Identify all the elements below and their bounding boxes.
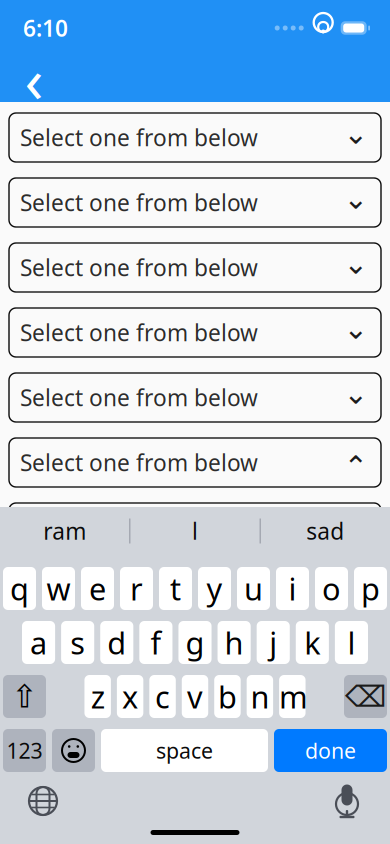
- button[interactable]: done: [274, 729, 387, 772]
- staticText: x: [122, 676, 138, 717]
- button[interactable]: y: [198, 567, 231, 610]
- button[interactable]: Shift: [3, 675, 46, 718]
- button[interactable]: Select one from below: [9, 113, 381, 162]
- button[interactable]: b: [214, 675, 241, 718]
- staticText: r: [130, 568, 143, 609]
- button[interactable]: Back: [8, 55, 60, 103]
- staticText: y: [206, 568, 222, 609]
- staticText: done: [305, 736, 356, 765]
- button[interactable]: Delete: [344, 675, 387, 718]
- staticText: Select one from below: [20, 512, 258, 542]
- staticText: p: [361, 568, 380, 609]
- button[interactable]: l: [130, 507, 260, 555]
- staticText: d: [107, 622, 126, 663]
- staticText: ⌄: [343, 312, 368, 345]
- staticText: Select one from below: [20, 252, 258, 282]
- staticText: e: [89, 568, 106, 609]
- staticText: ram: [43, 516, 86, 546]
- button[interactable]: h: [218, 621, 251, 664]
- staticText: h: [225, 622, 244, 663]
- staticText: f: [150, 622, 161, 663]
- button[interactable]: Switch keyboard: [20, 778, 66, 824]
- button[interactable]: e: [81, 567, 114, 610]
- button[interactable]: s: [61, 621, 94, 664]
- staticText: o: [322, 568, 341, 609]
- button[interactable]: a: [22, 621, 55, 664]
- button[interactable]: space: [101, 729, 268, 772]
- button[interactable]: Select one from below: [9, 438, 381, 487]
- staticText: z: [91, 676, 105, 717]
- button[interactable]: Select one from below: [9, 373, 381, 422]
- staticText: ⌄: [343, 182, 368, 215]
- staticText: ⇧: [11, 678, 38, 715]
- button[interactable]: r: [120, 567, 153, 610]
- staticText: ⌫: [345, 680, 386, 713]
- staticText: ⌄: [343, 117, 368, 150]
- staticText: m: [279, 676, 305, 717]
- button[interactable]: u: [237, 567, 270, 610]
- button[interactable]: t: [159, 567, 192, 610]
- staticText: space: [156, 736, 213, 765]
- staticText: ⌃: [343, 450, 368, 483]
- button[interactable]: w: [42, 567, 75, 610]
- button[interactable]: n: [247, 675, 273, 718]
- staticText: l: [192, 516, 198, 546]
- button[interactable]: v: [182, 675, 208, 718]
- staticText: 6:10: [23, 13, 68, 43]
- button[interactable]: q: [3, 567, 36, 610]
- button[interactable]: Select one from below: [9, 503, 381, 552]
- button[interactable]: Select one from below: [9, 308, 381, 357]
- button[interactable]: z: [84, 675, 111, 718]
- staticText: a: [30, 622, 47, 663]
- button[interactable]: Dictate: [324, 778, 370, 824]
- button[interactable]: Select one from below: [9, 243, 381, 292]
- button[interactable]: 123: [3, 729, 46, 772]
- button[interactable]: m: [279, 675, 305, 718]
- staticText: q: [10, 568, 29, 609]
- staticText: Select one from below: [20, 122, 258, 152]
- staticText: j: [269, 622, 277, 663]
- staticText: l: [347, 622, 355, 663]
- staticText: Select one from below: [20, 317, 258, 347]
- staticText: ⌄: [343, 247, 368, 280]
- button[interactable]: ram: [0, 507, 129, 555]
- button[interactable]: l: [335, 621, 368, 664]
- staticText: v: [187, 676, 203, 717]
- staticText: c: [155, 676, 170, 717]
- button[interactable]: j: [257, 621, 290, 664]
- staticText: 123: [6, 736, 42, 765]
- button[interactable]: k: [296, 621, 329, 664]
- button[interactable]: sad: [261, 507, 390, 555]
- button[interactable]: g: [178, 621, 211, 664]
- button[interactable]: Select one from below: [9, 178, 381, 227]
- button[interactable]: d: [100, 621, 133, 664]
- staticText: k: [304, 622, 320, 663]
- staticText: b: [218, 676, 237, 717]
- staticText: ⌄: [343, 377, 368, 410]
- staticText: i: [288, 568, 296, 609]
- button[interactable]: f: [139, 621, 172, 664]
- staticText: w: [46, 568, 70, 609]
- staticText: s: [70, 622, 85, 663]
- staticText: Select one from below: [20, 382, 258, 412]
- staticText: u: [244, 568, 263, 609]
- button[interactable]: i: [276, 567, 309, 610]
- button[interactable]: c: [149, 675, 176, 718]
- button[interactable]: x: [117, 675, 143, 718]
- staticText: Select one from below: [20, 447, 258, 477]
- button[interactable]: o: [315, 567, 348, 610]
- staticText: n: [250, 676, 269, 717]
- staticText: t: [170, 568, 181, 609]
- staticText: Select one from below: [20, 187, 258, 217]
- staticText: sad: [306, 516, 344, 546]
- button[interactable]: p: [354, 567, 387, 610]
- button[interactable]: Emoji: [52, 729, 95, 772]
- staticText: g: [185, 622, 204, 663]
- staticText: ‹: [24, 38, 43, 120]
